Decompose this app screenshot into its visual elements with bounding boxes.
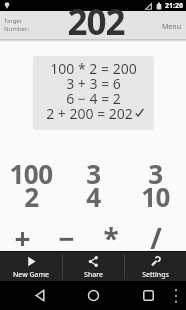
button[interactable]: Menu [162, 20, 181, 30]
staticText: 202 [67, 0, 125, 46]
staticText: 2 [24, 179, 39, 214]
staticText: − [58, 219, 75, 255]
button[interactable] [87, 289, 100, 302]
staticText: Menu [162, 22, 181, 32]
staticText: 100 * 2 = 200 [50, 59, 137, 74]
staticText: 10 [141, 179, 170, 214]
button[interactable]: 2 [0, 184, 62, 207]
staticText: 100 [9, 156, 53, 191]
staticText: 3 + 3 = 6 [66, 74, 121, 89]
button[interactable]: − [44, 223, 88, 251]
staticText: Target [4, 17, 22, 25]
staticText: * [103, 219, 119, 255]
button[interactable]: Settings [125, 252, 186, 281]
staticText: Share [84, 270, 103, 280]
staticText: 3 [148, 156, 163, 191]
staticText: Number: [4, 25, 30, 33]
button[interactable]: 3 [124, 161, 186, 184]
staticText: New Game [13, 270, 49, 280]
button[interactable]: * [88, 223, 133, 251]
button[interactable] [142, 289, 155, 302]
button[interactable]: 3 [62, 161, 124, 184]
staticText: 21:26 [165, 1, 183, 11]
staticText: Settings [142, 270, 169, 280]
button[interactable]: / [133, 223, 178, 251]
button[interactable]: + [0, 223, 44, 251]
staticText: 2 + 200 = 202 [44, 104, 135, 120]
button[interactable]: Share [63, 252, 124, 281]
staticText: + [14, 219, 31, 255]
button[interactable]: 4 [62, 184, 124, 207]
staticText: 4 [86, 179, 101, 214]
button[interactable]: 100 [0, 161, 62, 184]
button[interactable]: New Game [0, 252, 62, 281]
staticText: / [150, 219, 162, 255]
button[interactable]: 10 [124, 184, 186, 207]
staticText: 3 [86, 156, 101, 191]
button[interactable] [34, 289, 47, 302]
staticText: 6 − 4 = 2 [66, 89, 121, 104]
